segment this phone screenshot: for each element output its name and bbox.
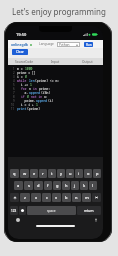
staticText: d	[37, 183, 40, 188]
button[interactable]: t	[48, 169, 56, 178]
staticText: Output	[82, 60, 93, 64]
button[interactable]: Emoji	[16, 218, 20, 222]
button[interactable]: a	[14, 181, 23, 190]
staticText: len	[29, 79, 35, 83]
button[interactable]: z	[20, 193, 30, 202]
staticText: print	[17, 107, 27, 111]
button[interactable]: i	[75, 169, 83, 178]
button[interactable]: f	[44, 181, 52, 190]
staticText: 7	[13, 91, 15, 95]
staticText: 2	[13, 71, 15, 75]
button[interactable]: space	[27, 206, 76, 215]
staticText: b	[65, 195, 68, 200]
staticText: 10	[11, 103, 15, 107]
staticText: 19:50	[16, 32, 27, 37]
staticText: f	[47, 183, 49, 188]
staticText: v	[55, 195, 58, 200]
button[interactable]: o	[84, 169, 92, 178]
staticText: u	[69, 171, 72, 176]
staticText: n	[29, 87, 33, 91]
staticText: i = i +	[17, 103, 36, 107]
staticText: prime.	[17, 99, 36, 103]
button[interactable]: SourceCode	[8, 58, 39, 65]
staticText: 3	[13, 75, 15, 79]
staticText: 6	[13, 87, 15, 91]
button[interactable]: p	[93, 169, 101, 178]
staticText: t	[51, 171, 53, 176]
button[interactable]: m	[82, 193, 91, 202]
button[interactable]: Backspace	[92, 193, 101, 202]
staticText: o	[87, 171, 90, 176]
button[interactable]: u	[66, 169, 74, 178]
button[interactable]: c	[42, 193, 51, 202]
button[interactable]: w	[20, 169, 29, 178]
button[interactable]: h	[62, 181, 70, 190]
button[interactable]: k	[80, 181, 88, 190]
staticText: 0	[25, 75, 27, 79]
button[interactable]: g	[53, 181, 61, 190]
staticText: x	[35, 195, 38, 200]
button[interactable]: s	[24, 181, 33, 190]
staticText: 5	[13, 83, 15, 87]
button[interactable]: Input	[39, 58, 71, 65]
staticText: m	[85, 195, 89, 200]
button[interactable]: v	[52, 193, 61, 202]
button[interactable]: r	[39, 169, 47, 178]
staticText: n	[75, 195, 78, 200]
staticText: i +=	[17, 83, 30, 87]
button[interactable]: e	[30, 169, 38, 178]
staticText: onlinegdb	[11, 42, 29, 47]
staticText: 1	[13, 67, 15, 71]
button[interactable]: Emoji	[19, 206, 26, 215]
button[interactable]: 123	[10, 206, 18, 215]
button[interactable]: j	[71, 181, 79, 190]
staticText: e	[33, 171, 36, 176]
staticText: Run	[86, 43, 92, 47]
button[interactable]: Voice input	[94, 218, 98, 222]
staticText: l	[92, 183, 94, 188]
staticText: a	[17, 183, 20, 188]
staticText: s	[28, 183, 30, 188]
staticText: c	[46, 195, 48, 200]
staticText: y	[60, 171, 63, 176]
staticText: Language	[39, 42, 54, 46]
staticText: Input	[51, 60, 60, 64]
button[interactable]: x	[31, 193, 41, 202]
staticText: 11	[11, 107, 15, 111]
button[interactable]: l	[89, 181, 97, 190]
staticText: 0	[27, 95, 31, 99]
button[interactable]: n	[72, 193, 81, 202]
staticText: not in	[31, 95, 44, 99]
button[interactable]: Python	[57, 42, 80, 47]
button[interactable]: b	[62, 193, 71, 202]
staticText: a:	[44, 95, 48, 99]
button[interactable]: Run	[84, 42, 93, 47]
staticText: r	[42, 171, 44, 176]
staticText: Python	[59, 43, 70, 47]
button[interactable]: Shift	[10, 193, 19, 202]
button[interactable]: y	[57, 169, 65, 178]
button[interactable]: Output	[71, 58, 103, 65]
button[interactable]: d	[34, 181, 43, 190]
staticText: (prime) <= m:	[35, 79, 60, 83]
staticText: 1	[36, 103, 38, 107]
staticText: SourceCode	[15, 60, 33, 64]
button[interactable]: q	[10, 169, 19, 178]
staticText: space	[47, 209, 56, 213]
button[interactable]: return	[77, 206, 101, 215]
staticText: append	[29, 91, 41, 95]
staticText: w	[23, 171, 27, 176]
staticText: for	[21, 87, 29, 91]
staticText: m =	[17, 67, 25, 71]
staticText: a.	[17, 91, 29, 95]
staticText: if	[21, 95, 27, 99]
staticText: z	[24, 195, 26, 200]
staticText: (i)	[48, 99, 54, 103]
staticText: h	[65, 183, 68, 188]
staticText: return	[84, 209, 94, 213]
button[interactable]: Clear	[12, 49, 28, 55]
staticText: prime:	[39, 87, 51, 91]
staticText: Let's enjoy programming	[12, 6, 106, 17]
staticText: g	[56, 183, 59, 188]
